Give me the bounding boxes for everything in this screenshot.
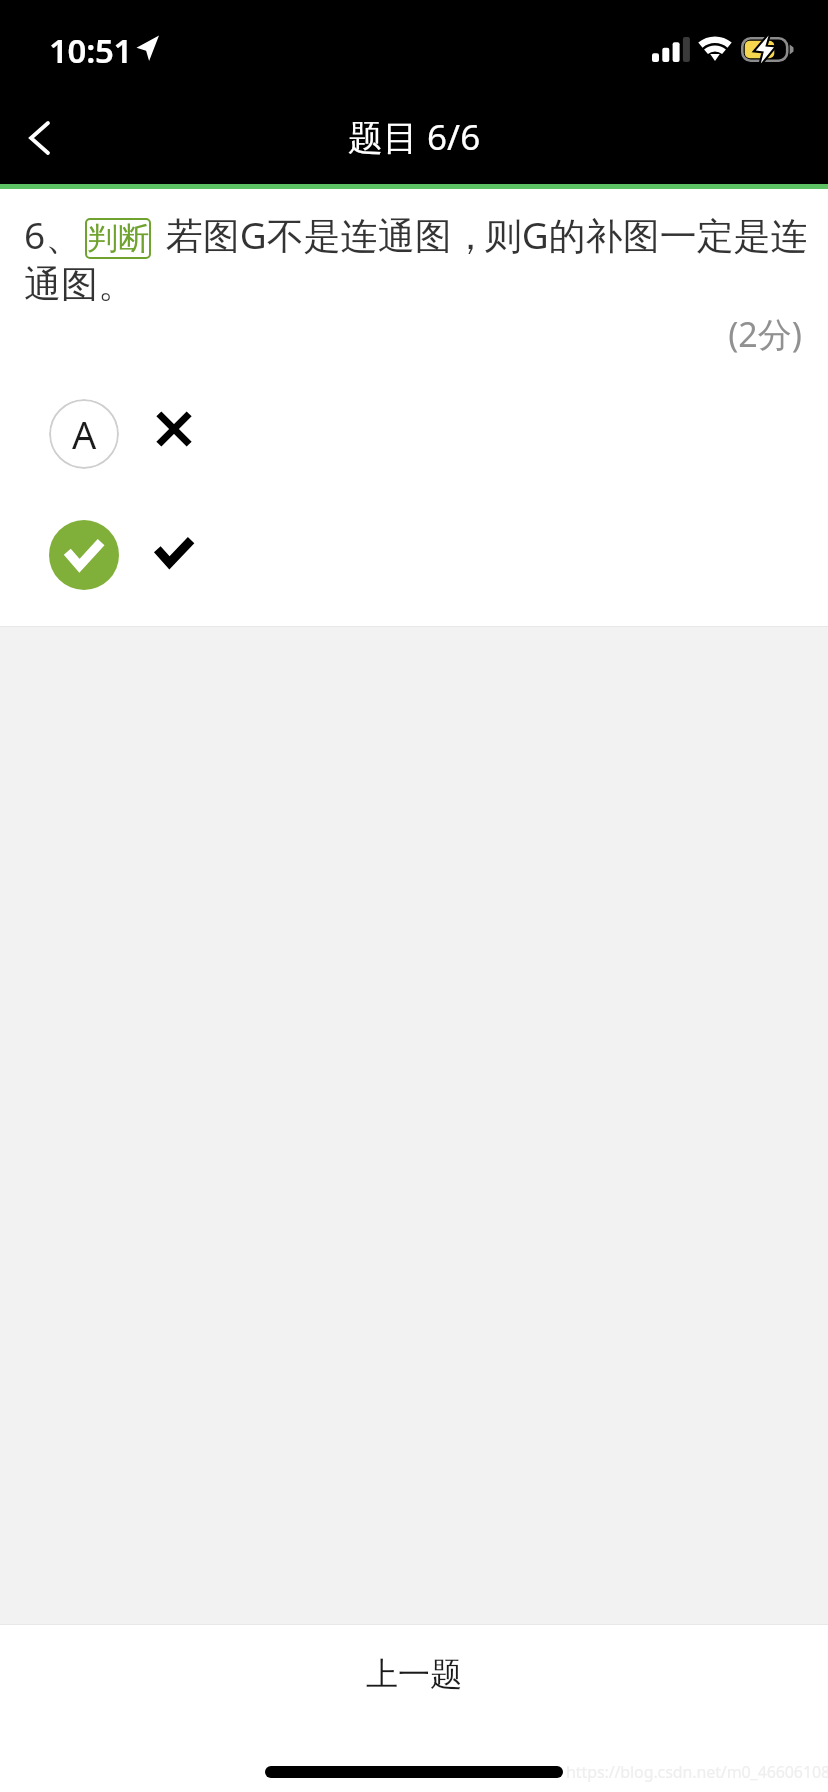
- staticText: A: [72, 408, 97, 460]
- staticText: 6、判断 若图G不是连通图，则G的补图一定是连 通图。: [24, 209, 808, 308]
- button[interactable]: A: [0, 399, 828, 469]
- staticText: 10:51: [49, 28, 133, 73]
- staticText: (2分): [24, 311, 802, 357]
- staticText: 判断: [87, 219, 149, 258]
- button[interactable]: Back: [0, 92, 79, 184]
- staticText: https://blog.csdn.net/m0_46606108: [566, 1761, 828, 1783]
- button[interactable]: 上一题: [0, 1625, 828, 1733]
- staticText: 题目 6/6: [348, 113, 481, 161]
- button[interactable]: [0, 520, 828, 590]
- staticText: 上一题: [366, 1654, 462, 1694]
